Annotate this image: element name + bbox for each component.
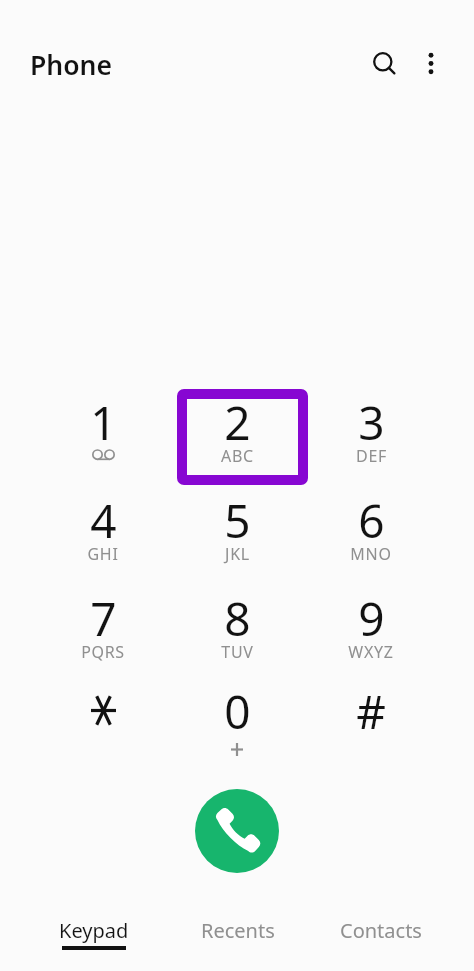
button[interactable]: Dial 0 — [177, 680, 297, 770]
button[interactable]: Dial 7 — [43, 587, 163, 677]
button[interactable]: Dial # — [311, 680, 431, 770]
staticText: 0 — [224, 680, 251, 743]
staticText: MNO — [350, 543, 392, 565]
staticText: Contacts — [340, 917, 422, 944]
staticText: Keypad — [59, 917, 129, 944]
staticText: GHI — [87, 543, 119, 565]
staticText: 1 — [90, 391, 117, 454]
staticText: # — [356, 680, 386, 743]
button[interactable]: Dial 2 — [177, 389, 308, 485]
staticText: Recents — [201, 917, 275, 944]
staticText: 9 — [358, 587, 385, 650]
button[interactable]: Dial 5 — [177, 489, 297, 579]
staticText: PQRS — [81, 641, 125, 663]
staticText: Phone — [30, 47, 112, 83]
staticText: 3 — [358, 391, 385, 454]
staticText: 4 — [90, 489, 117, 552]
staticText: 2 — [224, 391, 251, 454]
button[interactable]: Dial 6 — [311, 489, 431, 579]
staticText: 5 — [224, 489, 251, 552]
button[interactable]: Dial 8 — [177, 587, 297, 677]
button[interactable]: Dial 3 — [311, 391, 431, 481]
staticText: JKL — [225, 543, 250, 565]
staticText: TUV — [221, 641, 254, 663]
button[interactable]: Dial 9 — [311, 587, 431, 677]
button[interactable]: Keypad — [22, 896, 166, 971]
staticText: WXYZ — [348, 641, 394, 663]
button[interactable]: Contacts — [309, 896, 452, 971]
button[interactable]: Search — [361, 40, 409, 88]
button[interactable]: Call — [195, 789, 279, 873]
staticText: DEF — [356, 445, 387, 467]
staticText: 8 — [224, 587, 251, 650]
button[interactable]: More options — [407, 39, 455, 87]
staticText: 7 — [90, 587, 117, 650]
staticText: 6 — [358, 489, 385, 552]
staticText: ABC — [221, 445, 254, 467]
button[interactable]: Dial 4 — [43, 489, 163, 579]
button[interactable]: Recents — [166, 896, 309, 971]
button[interactable]: Dial * — [43, 680, 163, 770]
button[interactable]: Dial 1 — [43, 391, 163, 481]
